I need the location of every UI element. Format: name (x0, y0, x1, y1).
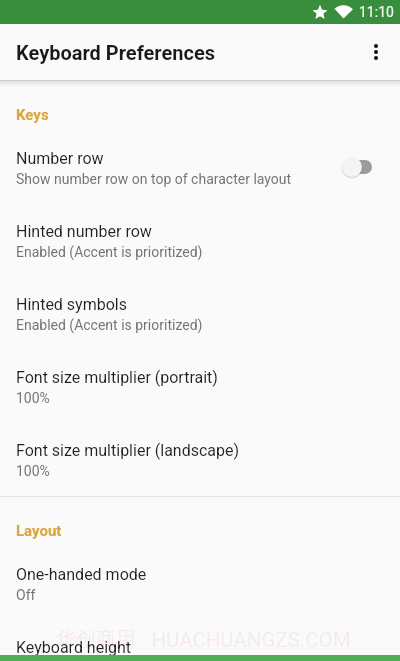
staticText: One-handed mode (16, 565, 147, 584)
staticText: 100% (16, 463, 50, 479)
button[interactable]: Keyboard height (0, 638, 400, 661)
staticText: Hinted symbols (16, 295, 127, 314)
staticText: Keyboard height (16, 638, 132, 657)
button[interactable]: Font size multiplier (portrait) (0, 368, 400, 441)
staticText: 100% (16, 390, 50, 406)
staticText: Enabled (Accent is prioritized) (16, 317, 203, 333)
staticText: Font size multiplier (landscape) (16, 441, 240, 460)
staticText: 华创商用 (56, 627, 136, 652)
staticText: 11:10 (359, 4, 394, 20)
button[interactable]: One-handed mode (0, 565, 400, 638)
button[interactable]: Hinted number row (0, 222, 400, 295)
staticText: Keys (16, 106, 49, 124)
button[interactable]: Hinted symbols (0, 295, 400, 368)
staticText: · HUACHUANGZS.COM (141, 628, 351, 652)
staticText: Number row (16, 149, 104, 168)
staticText: Enabled (Accent is prioritized) (16, 244, 203, 260)
staticText: Font size multiplier (portrait) (16, 368, 218, 387)
staticText: Hinted number row (16, 222, 152, 241)
staticText: Layout (16, 522, 62, 540)
button[interactable]: Font size multiplier (landscape) (0, 441, 400, 514)
button[interactable]: Number row (0, 149, 400, 222)
button[interactable]: More options (352, 28, 400, 76)
staticText: Keyboard Preferences (16, 41, 216, 64)
staticText: Off (16, 587, 36, 603)
button[interactable]: Toggle number row (341, 156, 372, 178)
staticText: Show number row on top of character layo… (16, 171, 292, 187)
